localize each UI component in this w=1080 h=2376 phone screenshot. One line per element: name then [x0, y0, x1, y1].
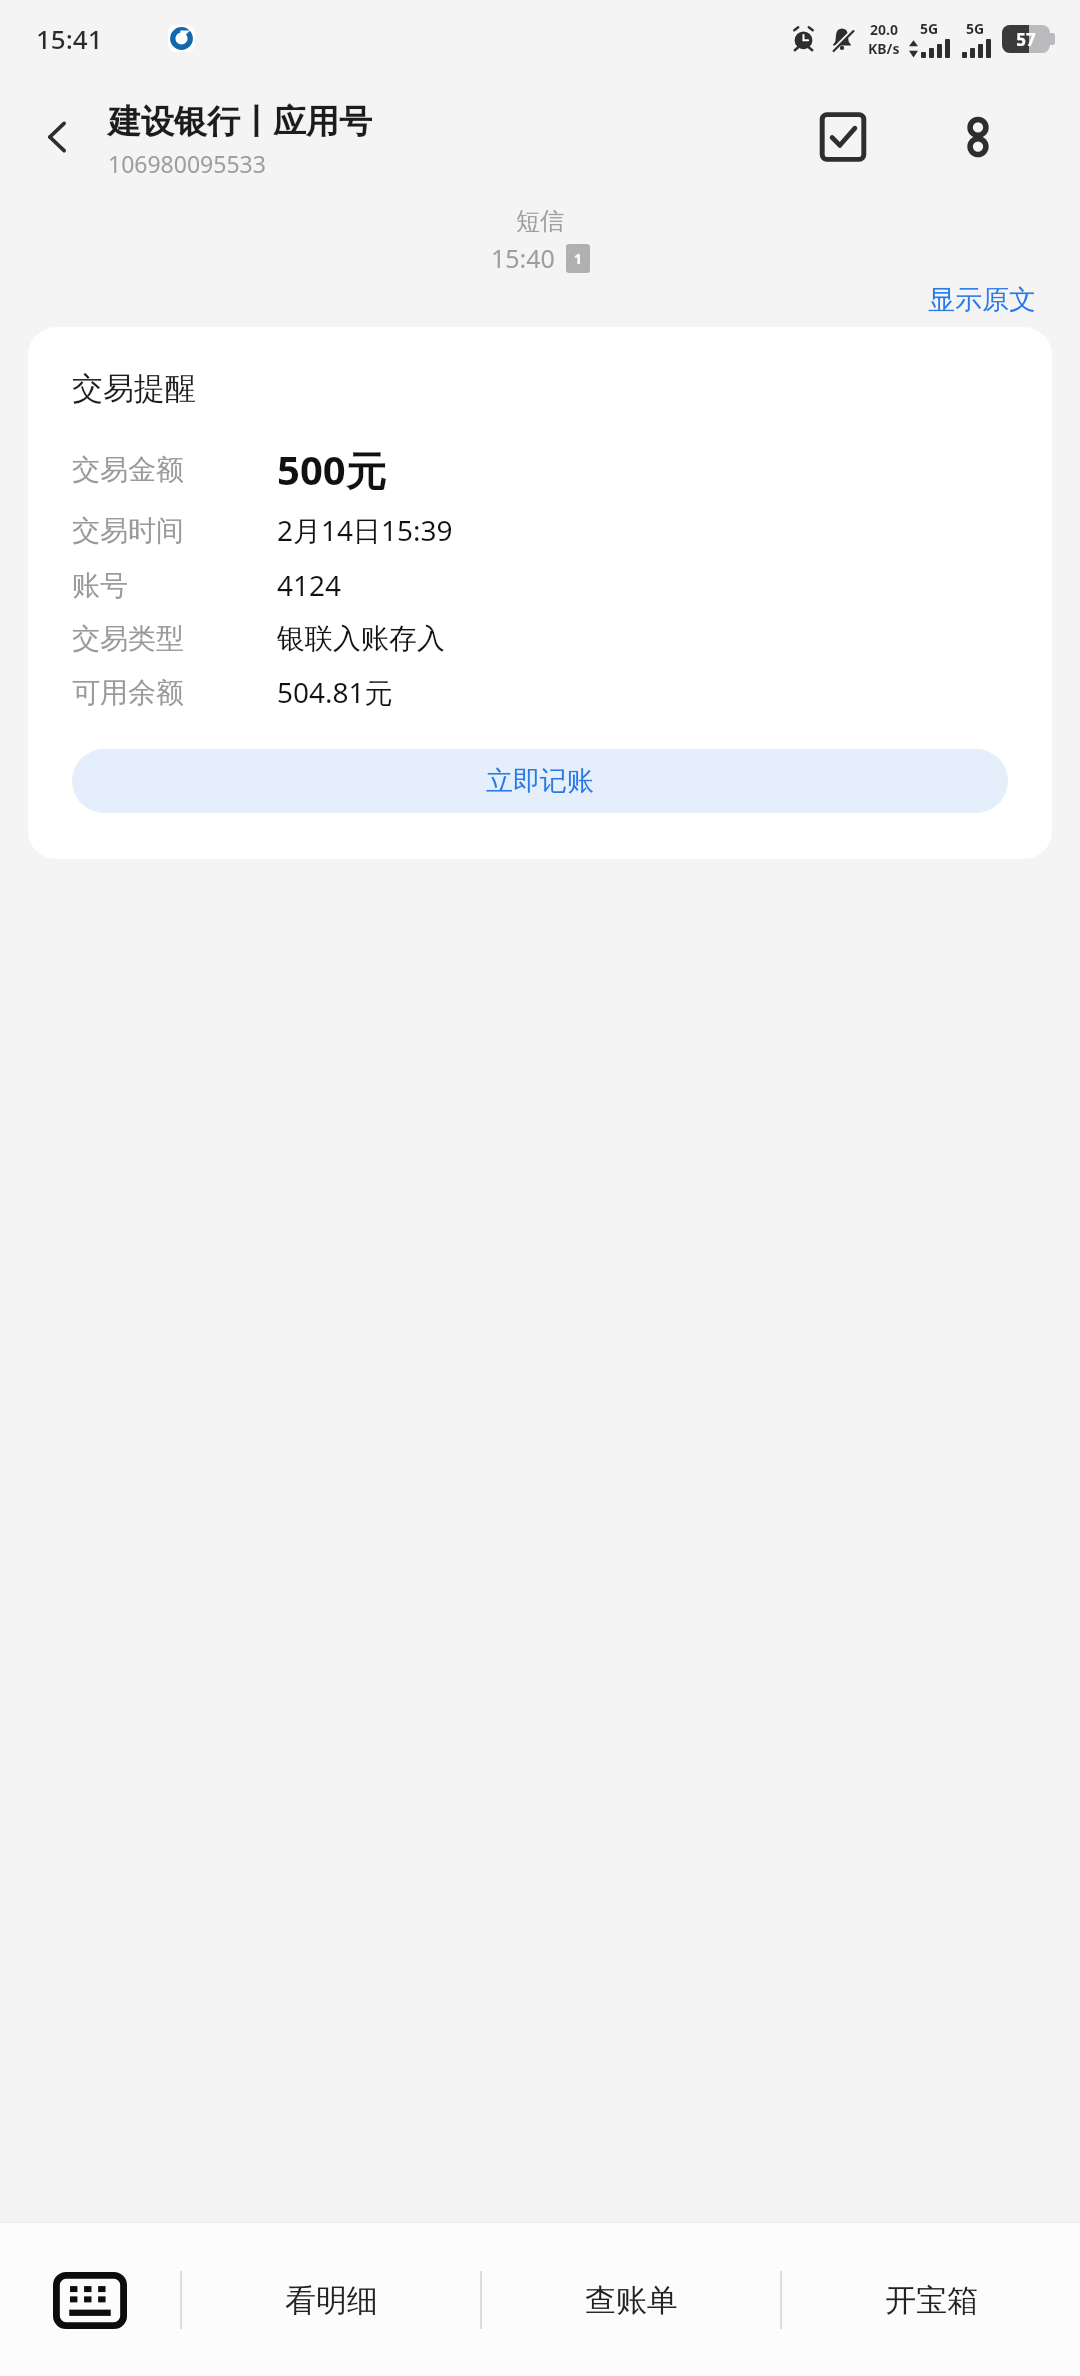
staticText: KB/s — [868, 39, 900, 58]
staticText: 查账单 — [585, 2281, 678, 2320]
button[interactable]: Keyboard — [0, 2248, 180, 2352]
staticText: 看明细 — [285, 2281, 378, 2320]
staticText: 立即记账 — [486, 764, 594, 798]
staticText: 交易金额 — [72, 452, 277, 487]
staticText: 15:40 — [491, 241, 555, 275]
staticText: 交易提醒 — [72, 369, 196, 408]
button[interactable]: 开宝箱 — [782, 2248, 1080, 2352]
staticText: 2月14日15:39 — [277, 511, 453, 549]
staticText: 交易时间 — [72, 513, 277, 548]
staticText: 5G — [966, 19, 985, 38]
staticText: 20.0 — [870, 20, 898, 39]
staticText: 短信 — [516, 206, 564, 236]
staticText: 57 — [1002, 28, 1050, 51]
button[interactable]: Select messages — [803, 97, 883, 177]
staticText: 5G — [920, 19, 939, 38]
button[interactable]: 看明细 — [182, 2248, 480, 2352]
staticText: 交易类型 — [72, 621, 277, 656]
staticText: 银联入账存入 — [277, 621, 445, 656]
staticText: 504.81元 — [277, 673, 393, 711]
button[interactable]: 查账单 — [482, 2248, 780, 2352]
button[interactable]: 立即记账 — [72, 749, 1008, 813]
staticText: 15:41 — [36, 21, 103, 56]
staticText: 建设银行丨应用号 — [108, 101, 372, 143]
staticText: 显示原文 — [928, 283, 1036, 317]
staticText: 可用余额 — [72, 675, 277, 710]
staticText: 4124 — [277, 566, 342, 604]
button[interactable]: Back — [20, 99, 96, 175]
staticText: 账号 — [72, 568, 277, 603]
staticText: 500元 — [277, 442, 386, 497]
staticText: 开宝箱 — [885, 2281, 978, 2320]
button[interactable]: 显示原文 — [928, 283, 1036, 317]
staticText: 1 — [574, 249, 583, 268]
staticText: 106980095533 — [108, 148, 266, 179]
button[interactable]: More options — [938, 97, 1018, 177]
